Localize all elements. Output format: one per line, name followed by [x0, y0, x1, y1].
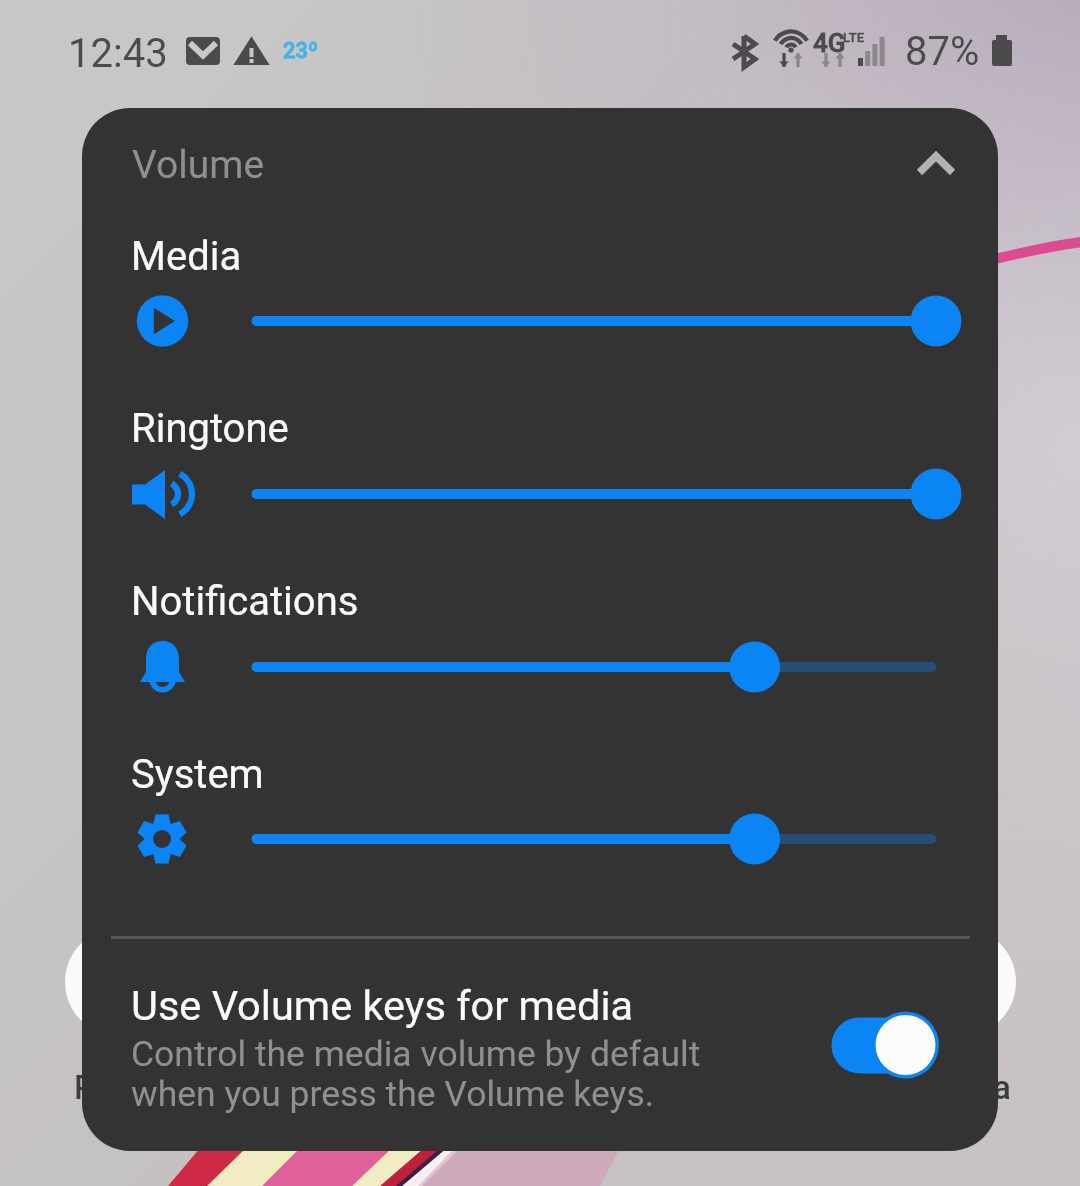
- staticText: 87%: [905, 28, 980, 75]
- staticText: Volume: [132, 142, 265, 188]
- button[interactable]: System volume slider: [82, 793, 998, 885]
- staticText: Camera: [896, 1068, 1011, 1107]
- button[interactable]: Collapse volume panel: [884, 113, 988, 217]
- staticText: Ringtone: [131, 405, 289, 452]
- button[interactable]: Media volume slider: [82, 275, 998, 367]
- button[interactable]: Use Volume keys for media: [82, 955, 998, 1140]
- staticText: 23º: [283, 38, 319, 64]
- staticText: Control the media volume by default when…: [131, 1033, 701, 1115]
- staticText: 4G: [813, 28, 846, 58]
- button[interactable]: Use Volume keys for media toggle: [822, 1005, 952, 1095]
- staticText: Media: [131, 233, 242, 280]
- button[interactable]: Notifications volume slider: [82, 621, 998, 713]
- button[interactable]: Ringtone volume slider: [82, 448, 998, 540]
- staticText: System: [131, 751, 264, 798]
- staticText: 12:43: [68, 30, 168, 77]
- staticText: Notifications: [131, 578, 359, 625]
- staticText: LTE: [843, 30, 864, 45]
- staticText: Use Volume keys for media: [131, 981, 634, 1030]
- staticText: Phone: [74, 1068, 169, 1107]
